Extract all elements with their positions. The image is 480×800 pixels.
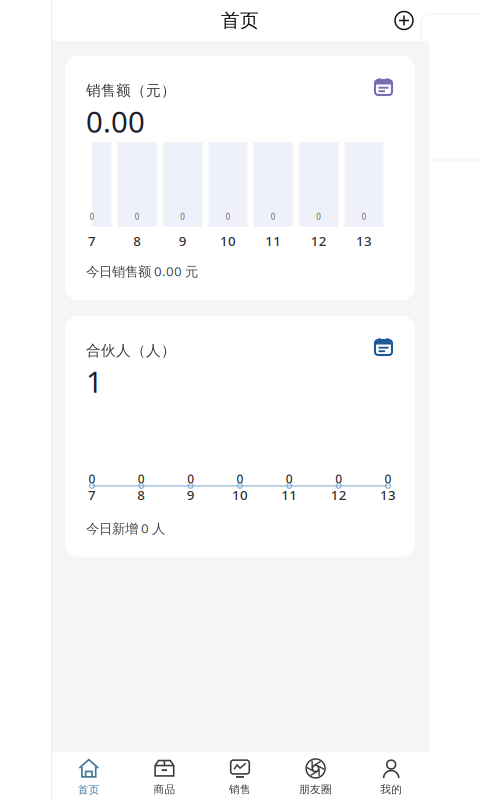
staticText: 商品 (153, 783, 175, 796)
staticText: 13 (356, 232, 372, 250)
staticText: 0 (89, 211, 94, 222)
staticText: 0 (335, 471, 342, 487)
staticText: 首页 (221, 9, 259, 32)
button[interactable]: 商品 (127, 752, 202, 800)
staticText: 今日新增 0 人 (86, 519, 165, 537)
staticText: 合伙人（人） (86, 341, 176, 359)
staticText: 10 (232, 486, 248, 504)
staticText: 11 (281, 486, 297, 504)
staticText: 9 (179, 232, 187, 250)
button[interactable]: 销售 (202, 752, 278, 800)
staticText: 我的 (380, 783, 402, 796)
staticText: 8 (137, 486, 145, 504)
staticText: 12 (311, 232, 327, 250)
staticText: 0 (361, 211, 366, 222)
staticText: 0 (180, 211, 185, 222)
staticText: 13 (380, 486, 396, 504)
staticText: 0 (271, 211, 276, 222)
staticText: 朋友圈 (299, 783, 332, 796)
staticText: 0 (225, 211, 230, 222)
staticText: 8 (133, 232, 141, 250)
staticText: 0 (384, 471, 391, 487)
staticText: 0 (187, 471, 194, 487)
staticText: 销售 (229, 783, 251, 796)
staticText: 首页 (78, 783, 100, 796)
button[interactable]: 首页 (51, 751, 127, 800)
staticText: 7 (88, 486, 96, 504)
staticText: 7 (88, 232, 96, 250)
staticText: 销售额（元） (86, 81, 176, 99)
button[interactable]: Add (395, 11, 413, 29)
staticText: 0 (316, 211, 321, 222)
staticText: 0 (88, 471, 95, 487)
staticText: 1 (86, 362, 103, 401)
staticText: 9 (187, 486, 195, 504)
staticText: 0 (286, 471, 293, 487)
button[interactable]: 我的 (353, 752, 429, 800)
staticText: 11 (265, 232, 281, 250)
button[interactable]: 朋友圈 (278, 752, 353, 800)
staticText: 0 (236, 471, 243, 487)
staticText: 0 (138, 471, 145, 487)
staticText: 0.00 (86, 102, 145, 141)
staticText: 12 (331, 486, 347, 504)
staticText: 0 (135, 211, 140, 222)
staticText: 10 (220, 232, 236, 250)
staticText: 今日销售额 0.00 元 (86, 262, 198, 280)
